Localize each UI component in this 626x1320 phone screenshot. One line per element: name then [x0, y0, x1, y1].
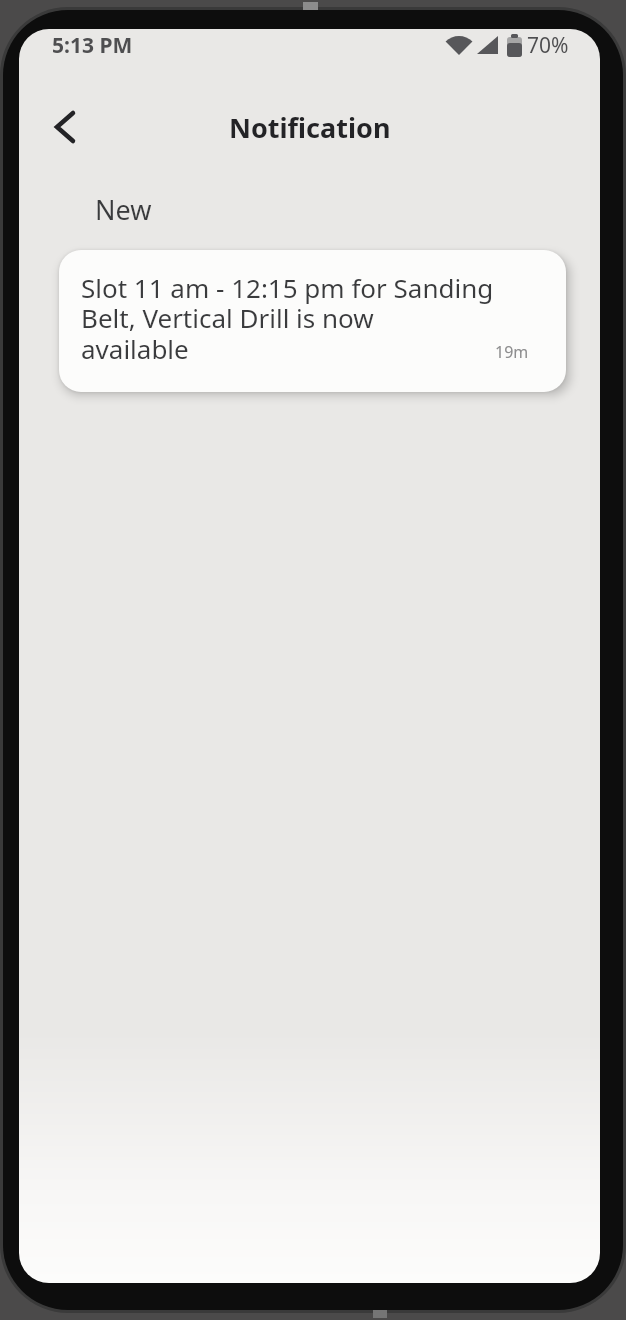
button[interactable] [41, 105, 89, 149]
staticText: New [95, 191, 152, 228]
staticText: Notification [229, 109, 391, 146]
staticText: 19m [495, 341, 529, 363]
staticText: 5:13 PM [52, 31, 133, 60]
staticText: 70% [527, 31, 569, 60]
staticText: Slot 11 am - 12:15 pm for Sanding Belt, … [81, 270, 494, 367]
button[interactable]: Slot 11 am - 12:15 pm for Sanding Belt, … [59, 250, 566, 392]
